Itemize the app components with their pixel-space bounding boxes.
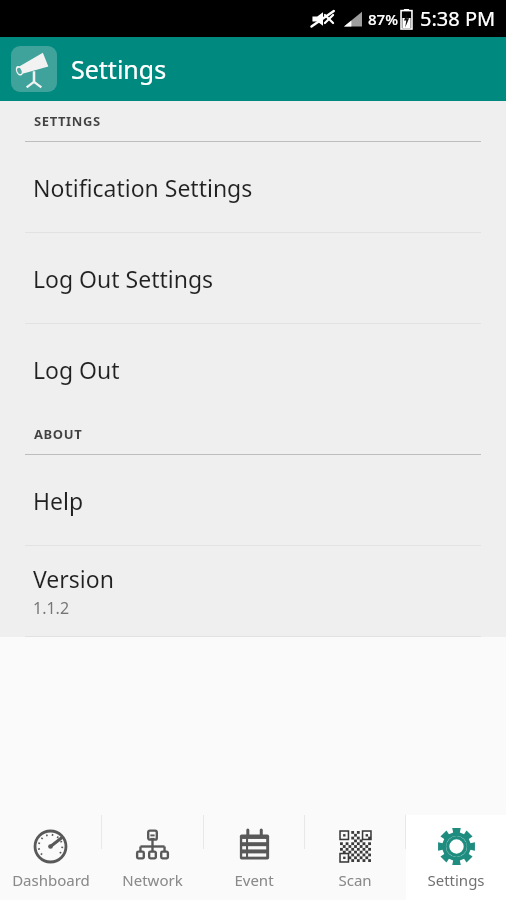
staticText: Version [33,563,114,594]
staticText: Log Out [33,354,120,385]
staticText: ABOUT [34,425,83,443]
staticText: Settings [71,52,167,86]
staticText: 5:38 PM [420,5,496,32]
staticText: Event [234,870,274,890]
button[interactable]: Settings [406,815,506,900]
staticText: 87% [368,9,398,29]
button[interactable]: Log Out Settings [0,233,506,323]
button[interactable]: Scan [305,815,405,900]
button[interactable]: Network [102,815,203,900]
staticText: Log Out Settings [33,263,214,294]
staticText: 1.1.2 [33,597,70,619]
staticText: Dashboard [12,870,90,890]
staticText: Help [33,485,84,516]
staticText: Settings [427,870,485,890]
button[interactable]: Log Out [0,324,506,414]
button[interactable]: Dashboard [0,815,101,900]
staticText: Network [122,870,183,890]
staticText: Notification Settings [33,172,253,203]
button[interactable]: Help [0,455,506,545]
button[interactable]: Event [204,815,304,900]
staticText: SETTINGS [34,112,101,130]
staticText: Scan [338,870,372,890]
button[interactable]: Notification Settings [0,142,506,232]
button[interactable]: Version [0,546,506,636]
